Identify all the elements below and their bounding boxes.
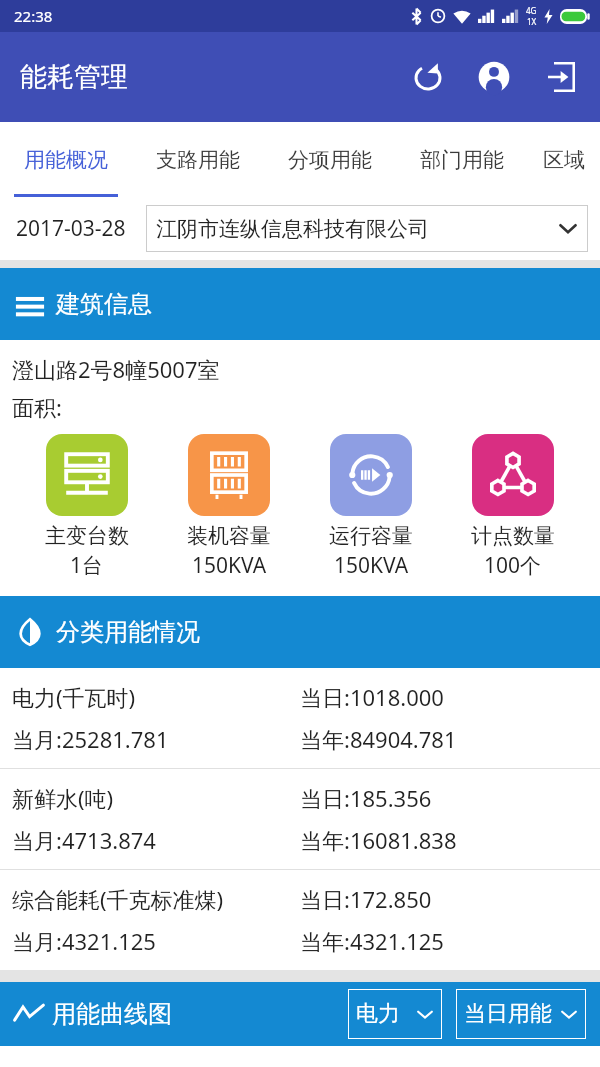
button[interactable]: 当日用能	[456, 989, 586, 1039]
staticText: 分类用能情况	[56, 617, 200, 647]
staticText: 面积:	[12, 392, 62, 422]
staticText: 部门用能	[420, 147, 504, 173]
staticText: 运行容量	[329, 523, 413, 549]
staticText: 能耗管理	[20, 60, 128, 94]
staticText: 1X	[527, 16, 537, 27]
staticText: 当日:185.356	[300, 783, 432, 813]
staticText: 1台	[70, 551, 104, 580]
button[interactable]: 计点数量	[442, 434, 584, 580]
staticText: 当月:4321.125	[12, 926, 300, 956]
staticText: 电力	[356, 1000, 416, 1028]
button[interactable]: Refresh	[408, 57, 448, 97]
staticText: 100个	[484, 551, 542, 580]
staticText: 建筑信息	[56, 289, 152, 319]
staticText: 当月:4713.874	[12, 825, 300, 855]
button[interactable]: 支路用能	[132, 122, 264, 197]
staticText: 150KVA	[192, 551, 267, 580]
staticText: 22:38	[14, 6, 53, 26]
staticText: 江阴市连纵信息科技有限公司	[156, 216, 558, 242]
staticText: 用能概况	[24, 147, 108, 173]
button[interactable]: 新鲜水(吨)	[0, 769, 600, 869]
staticText: 2017-03-28	[16, 214, 126, 243]
staticText: 装机容量	[187, 523, 271, 549]
staticText: 当年:84904.781	[300, 724, 457, 754]
staticText: 当年:4321.125	[300, 926, 444, 956]
staticText: 主变台数	[45, 523, 129, 549]
staticText: 电力(千瓦时)	[12, 682, 300, 712]
staticText: 计点数量	[471, 523, 555, 549]
button[interactable]: 装机容量	[158, 434, 300, 580]
button[interactable]: 建筑信息	[0, 268, 600, 340]
button[interactable]: 江阴市连纵信息科技有限公司	[146, 205, 588, 252]
staticText: 4G	[526, 5, 537, 16]
staticText: 150KVA	[334, 551, 409, 580]
button[interactable]: 分项用能	[264, 122, 396, 197]
button[interactable]: 电力	[348, 989, 442, 1039]
button[interactable]: Account	[474, 57, 514, 97]
button[interactable]: 主变台数	[16, 434, 158, 580]
staticText: 分项用能	[288, 147, 372, 173]
button[interactable]: Logout	[540, 57, 580, 97]
staticText: 当日:1018.000	[300, 682, 444, 712]
button[interactable]: 电力(千瓦时)	[0, 668, 600, 768]
button[interactable]: 分类用能情况	[0, 596, 600, 668]
staticText: 新鲜水(吨)	[12, 783, 300, 813]
button[interactable]: 2017-03-28	[12, 208, 130, 249]
staticText: 用能曲线图	[52, 999, 172, 1029]
button[interactable]: 综合能耗(千克标准煤)	[0, 870, 600, 970]
button[interactable]: 区域	[528, 122, 600, 197]
staticText: 区域	[543, 147, 585, 173]
button[interactable]: 部门用能	[396, 122, 528, 197]
staticText: 当月:25281.781	[12, 724, 300, 754]
staticText: 当日用能	[464, 1000, 560, 1028]
button[interactable]: 用能概况	[0, 122, 132, 197]
staticText: 当年:16081.838	[300, 825, 457, 855]
staticText: 当日:172.850	[300, 884, 432, 914]
staticText: 综合能耗(千克标准煤)	[12, 884, 300, 914]
staticText: 澄山路2号8幢5007室	[12, 354, 220, 384]
button[interactable]: 运行容量	[300, 434, 442, 580]
staticText: 支路用能	[156, 147, 240, 173]
